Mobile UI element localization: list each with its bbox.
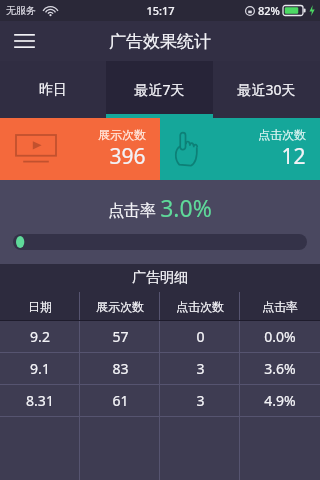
staticText: 点击率 <box>108 201 156 221</box>
button[interactable]: Menu <box>0 21 48 61</box>
staticText: 9.1 <box>30 359 50 378</box>
staticText: 3.0% <box>160 192 212 223</box>
staticText: 0 <box>196 327 205 346</box>
staticText: 8.31 <box>26 391 54 410</box>
staticText: 12 <box>281 142 306 171</box>
staticText: 广告效果统计 <box>109 31 211 52</box>
staticText: 广告明细 <box>132 269 188 287</box>
staticText: 3.6% <box>264 359 296 378</box>
button[interactable]: 展示次数 <box>0 118 160 180</box>
staticText: 展示次数 <box>96 299 144 314</box>
button[interactable]: 最近30天 <box>213 61 320 118</box>
staticText: 4.9% <box>264 391 296 410</box>
staticText: 点击次数 <box>176 299 224 314</box>
staticText: 57 <box>112 327 129 346</box>
button[interactable]: 点击次数 <box>160 118 320 180</box>
staticText: 396 <box>109 142 146 171</box>
button[interactable]: Click rate progress <box>13 234 307 250</box>
staticText: 61 <box>112 391 129 410</box>
button[interactable]: 最近7天 <box>106 61 213 118</box>
staticText: 无服务 <box>6 4 36 17</box>
staticText: 3 <box>196 359 205 378</box>
staticText: 3 <box>196 391 205 410</box>
staticText: 82% <box>258 3 280 18</box>
button[interactable]: 昨日 <box>0 61 106 118</box>
staticText: 展示次数 <box>98 127 146 142</box>
staticText: 9.2 <box>30 327 50 346</box>
staticText: 昨日 <box>39 81 67 99</box>
staticText: 点击次数 <box>258 127 306 142</box>
staticText: 83 <box>112 359 129 378</box>
staticText: 15:17 <box>146 3 175 18</box>
staticText: 最近7天 <box>134 80 185 99</box>
staticText: 点击率 <box>262 299 298 314</box>
staticText: 最近30天 <box>237 80 296 99</box>
staticText: 0.0% <box>264 327 296 346</box>
staticText: 日期 <box>28 299 52 314</box>
